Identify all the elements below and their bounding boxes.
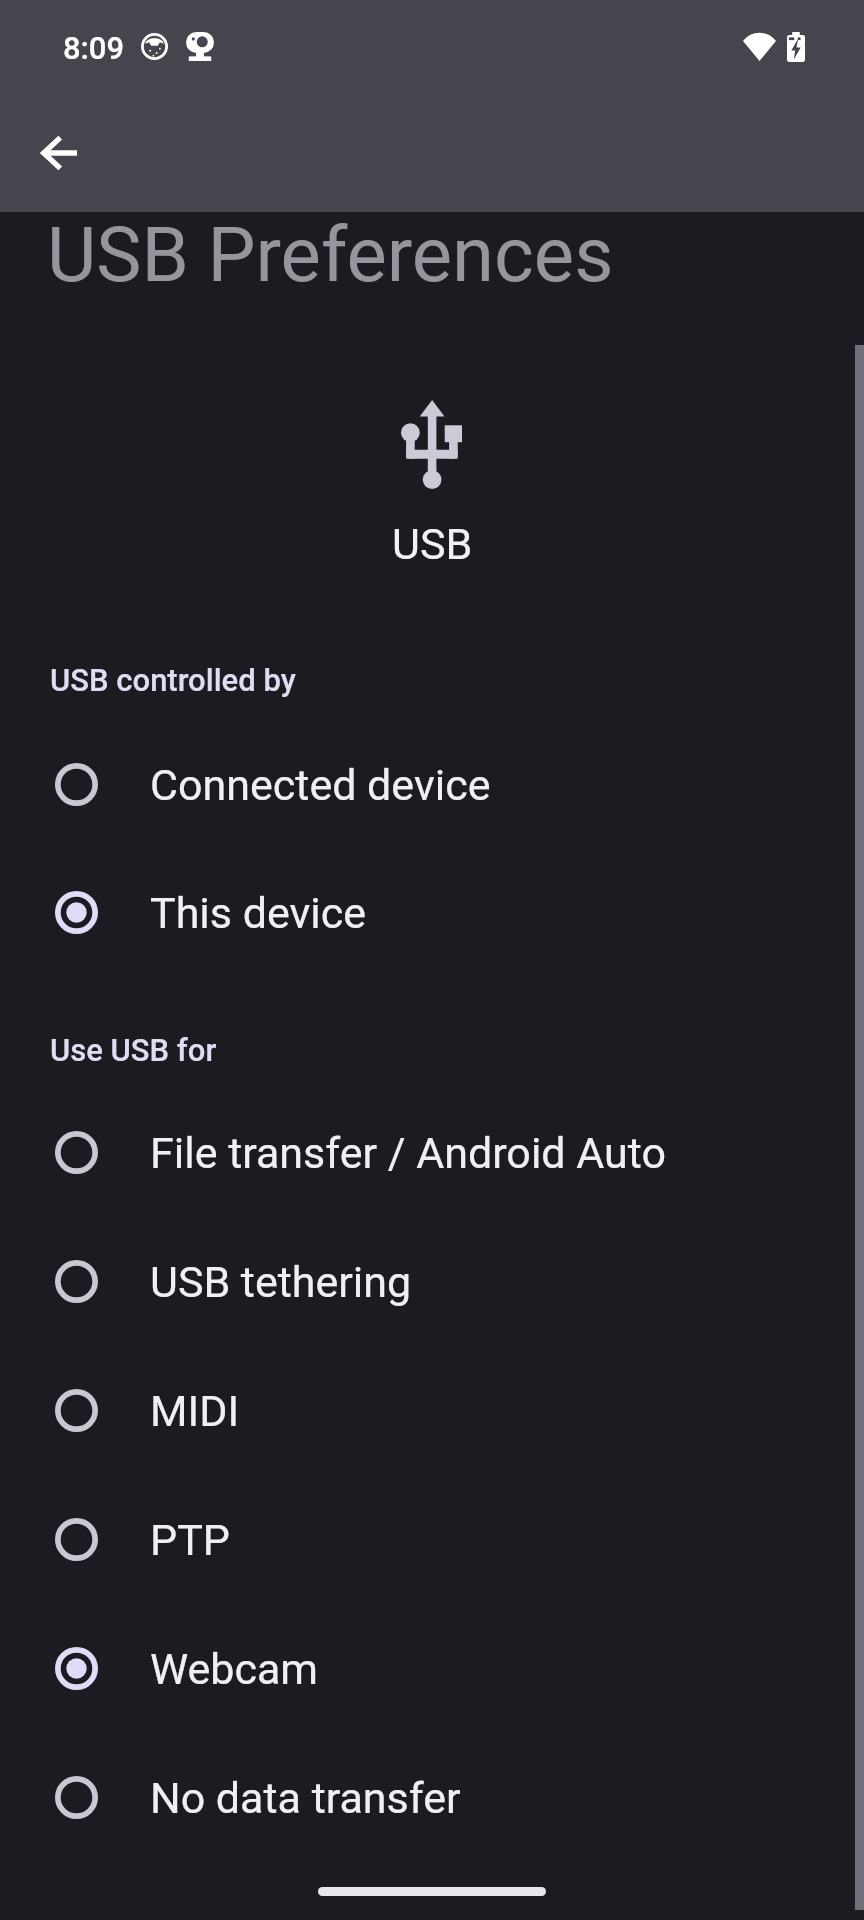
- staticText: File transfer / Android Auto: [150, 1128, 666, 1178]
- staticText: USB: [392, 519, 473, 569]
- staticText: 8:09: [63, 30, 125, 66]
- staticText: USB tethering: [150, 1257, 412, 1307]
- button[interactable]: Webcam: [0, 1604, 864, 1733]
- button[interactable]: This device: [0, 848, 864, 977]
- staticText: No data transfer: [150, 1773, 461, 1823]
- staticText: USB Preferences: [47, 210, 614, 299]
- staticText: USB controlled by: [50, 662, 296, 698]
- button[interactable]: MIDI: [0, 1346, 864, 1475]
- button[interactable]: No data transfer: [0, 1733, 864, 1862]
- button[interactable]: PTP: [0, 1475, 864, 1604]
- staticText: MIDI: [150, 1386, 240, 1436]
- staticText: Webcam: [150, 1644, 319, 1694]
- button[interactable]: Navigate up: [19, 113, 99, 193]
- staticText: Use USB for: [50, 1032, 217, 1068]
- button[interactable]: USB tethering: [0, 1217, 864, 1346]
- button[interactable]: Connected device: [0, 720, 864, 849]
- staticText: Connected device: [150, 760, 491, 810]
- button[interactable]: File transfer / Android Auto: [0, 1088, 864, 1217]
- staticText: This device: [150, 888, 367, 938]
- staticText: PTP: [150, 1515, 230, 1565]
